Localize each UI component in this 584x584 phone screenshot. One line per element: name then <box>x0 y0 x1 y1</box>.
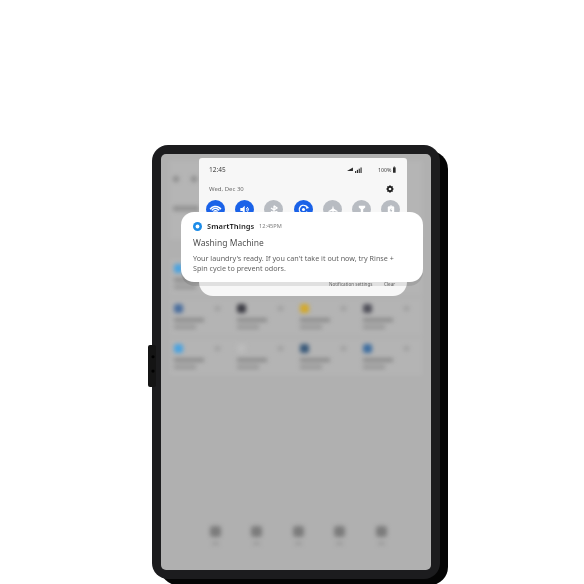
staticText: 12:45 <box>209 165 226 174</box>
button[interactable]: Flashlight <box>352 200 371 219</box>
staticText: SmartThings <box>207 221 255 231</box>
staticText: Washing Machine <box>193 237 264 249</box>
button[interactable]: SmartThings <box>181 212 423 282</box>
staticText: Notification settings <box>329 281 373 287</box>
staticText: Clear <box>384 281 396 287</box>
button[interactable]: Auto rotate <box>294 200 313 219</box>
button[interactable]: Notification settings <box>327 279 375 289</box>
button[interactable]: Airplane mode <box>323 200 342 219</box>
staticText: Wed, Dec 30 <box>209 185 244 193</box>
button[interactable]: Bluetooth <box>264 200 283 219</box>
staticText: 12:45PM <box>259 222 282 230</box>
staticText: Your laundry's ready. If you can't take … <box>193 253 394 273</box>
button[interactable]: Settings <box>383 182 397 196</box>
staticText: 100% <box>378 166 392 173</box>
button[interactable]: Clear <box>382 279 398 289</box>
button[interactable]: Power saving <box>381 200 400 219</box>
button[interactable]: Wi-Fi <box>206 200 225 219</box>
button[interactable]: Sound <box>235 200 254 219</box>
